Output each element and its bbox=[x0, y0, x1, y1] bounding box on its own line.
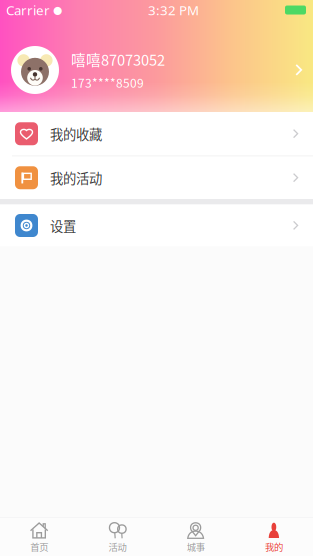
staticText: 我的收藏 bbox=[50, 124, 102, 143]
staticText: ● bbox=[53, 4, 62, 16]
staticText: 我的活动 bbox=[50, 168, 102, 187]
staticText: 城事 bbox=[187, 540, 205, 553]
staticText: Carrier bbox=[6, 1, 50, 19]
button[interactable]: 活动 bbox=[78, 517, 156, 556]
button[interactable]: 我的收藏 bbox=[0, 112, 313, 155]
staticText: 嘻嘻87073052 bbox=[71, 49, 165, 70]
staticText: 设置 bbox=[50, 216, 76, 235]
button[interactable]: 首页 bbox=[0, 517, 78, 556]
button[interactable]: 城事 bbox=[156, 517, 235, 556]
staticText: 我的 bbox=[265, 540, 283, 553]
staticText: 活动 bbox=[108, 540, 126, 553]
button[interactable]: 我的 bbox=[235, 517, 313, 556]
staticText: 首页 bbox=[30, 540, 48, 553]
staticText: 3:32 PM bbox=[148, 1, 199, 19]
button[interactable]: 嘻嘻87073052 bbox=[0, 46, 313, 94]
button[interactable]: 设置 bbox=[0, 204, 313, 246]
staticText: 173****8509 bbox=[71, 74, 144, 91]
button[interactable]: 我的活动 bbox=[0, 156, 313, 199]
